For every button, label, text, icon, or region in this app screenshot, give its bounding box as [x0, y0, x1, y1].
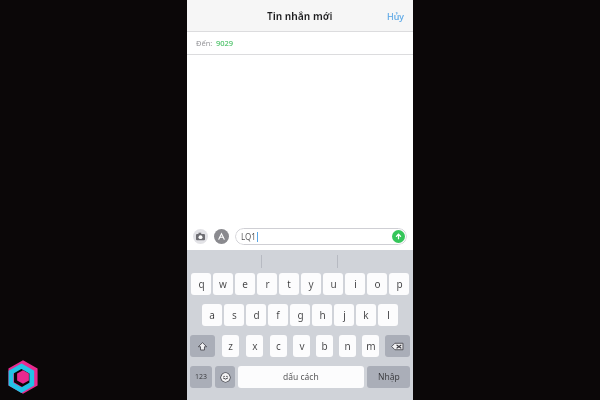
staticText: n — [344, 339, 351, 353]
button[interactable]: d — [246, 304, 266, 326]
staticText: k — [363, 308, 369, 322]
button[interactable]: i — [345, 273, 365, 295]
button[interactable]: a — [202, 304, 222, 326]
staticText: q — [198, 277, 205, 291]
staticText: h — [319, 308, 326, 322]
staticText: l — [387, 308, 390, 322]
staticText: g — [297, 308, 304, 322]
button[interactable]: v — [293, 335, 310, 357]
button[interactable]: Send — [392, 230, 405, 243]
button[interactable]: Nhập — [367, 366, 410, 388]
button[interactable]: w — [213, 273, 233, 295]
staticText: a — [209, 308, 215, 322]
button[interactable]: x — [246, 335, 263, 357]
staticText: c — [276, 339, 281, 353]
staticText: i — [354, 277, 357, 291]
staticText: 123 — [195, 372, 208, 382]
button[interactable]: r — [257, 273, 277, 295]
staticText: Đến: — [196, 38, 213, 48]
button[interactable]: Backspace — [385, 335, 410, 357]
button[interactable]: s — [224, 304, 244, 326]
staticText: Hủy — [387, 10, 404, 22]
staticText: r — [265, 277, 270, 291]
staticText: y — [308, 277, 314, 291]
staticText: o — [374, 277, 381, 291]
button[interactable]: q — [191, 273, 211, 295]
staticText: v — [299, 339, 305, 353]
button[interactable]: g — [290, 304, 310, 326]
button[interactable]: LQ1 — [235, 228, 407, 245]
staticText: s — [232, 308, 237, 322]
staticText: dấu cách — [283, 371, 319, 383]
button[interactable]: p — [389, 273, 409, 295]
staticText: m — [366, 339, 376, 353]
button[interactable]: u — [323, 273, 343, 295]
button[interactable]: h — [312, 304, 332, 326]
staticText: t — [287, 277, 291, 291]
staticText: x — [252, 339, 258, 353]
button[interactable]: l — [378, 304, 398, 326]
button[interactable]: t — [279, 273, 299, 295]
button[interactable]: j — [334, 304, 354, 326]
button[interactable]: e — [235, 273, 255, 295]
button[interactable]: dấu cách — [238, 366, 364, 388]
staticText: e — [242, 277, 248, 291]
button[interactable]: n — [339, 335, 356, 357]
button[interactable]: Đến: — [187, 32, 413, 54]
button[interactable]: Camera — [193, 229, 208, 244]
button[interactable]: b — [316, 335, 333, 357]
staticText: 9029 — [216, 38, 234, 48]
button[interactable]: f — [268, 304, 288, 326]
staticText: z — [228, 339, 233, 353]
button[interactable]: y — [301, 273, 321, 295]
staticText: b — [321, 339, 328, 353]
staticText: LQ1 — [241, 231, 256, 242]
button[interactable]: 123 — [190, 366, 212, 388]
staticText: u — [330, 277, 337, 291]
staticText: p — [396, 277, 403, 291]
button[interactable]: c — [270, 335, 287, 357]
staticText: j — [343, 308, 346, 322]
button[interactable]: z — [222, 335, 239, 357]
staticText: f — [276, 308, 280, 322]
button[interactable]: App Store — [214, 229, 229, 244]
button[interactable]: Shift — [190, 335, 215, 357]
staticText: Tin nhắn mới — [267, 9, 333, 23]
button[interactable]: Hủy — [378, 3, 413, 29]
staticText: Nhập — [378, 371, 400, 383]
button[interactable]: m — [362, 335, 379, 357]
button[interactable]: Emoji — [215, 366, 235, 388]
staticText: d — [253, 308, 260, 322]
button[interactable]: k — [356, 304, 376, 326]
button[interactable]: o — [367, 273, 387, 295]
staticText: w — [219, 277, 227, 291]
